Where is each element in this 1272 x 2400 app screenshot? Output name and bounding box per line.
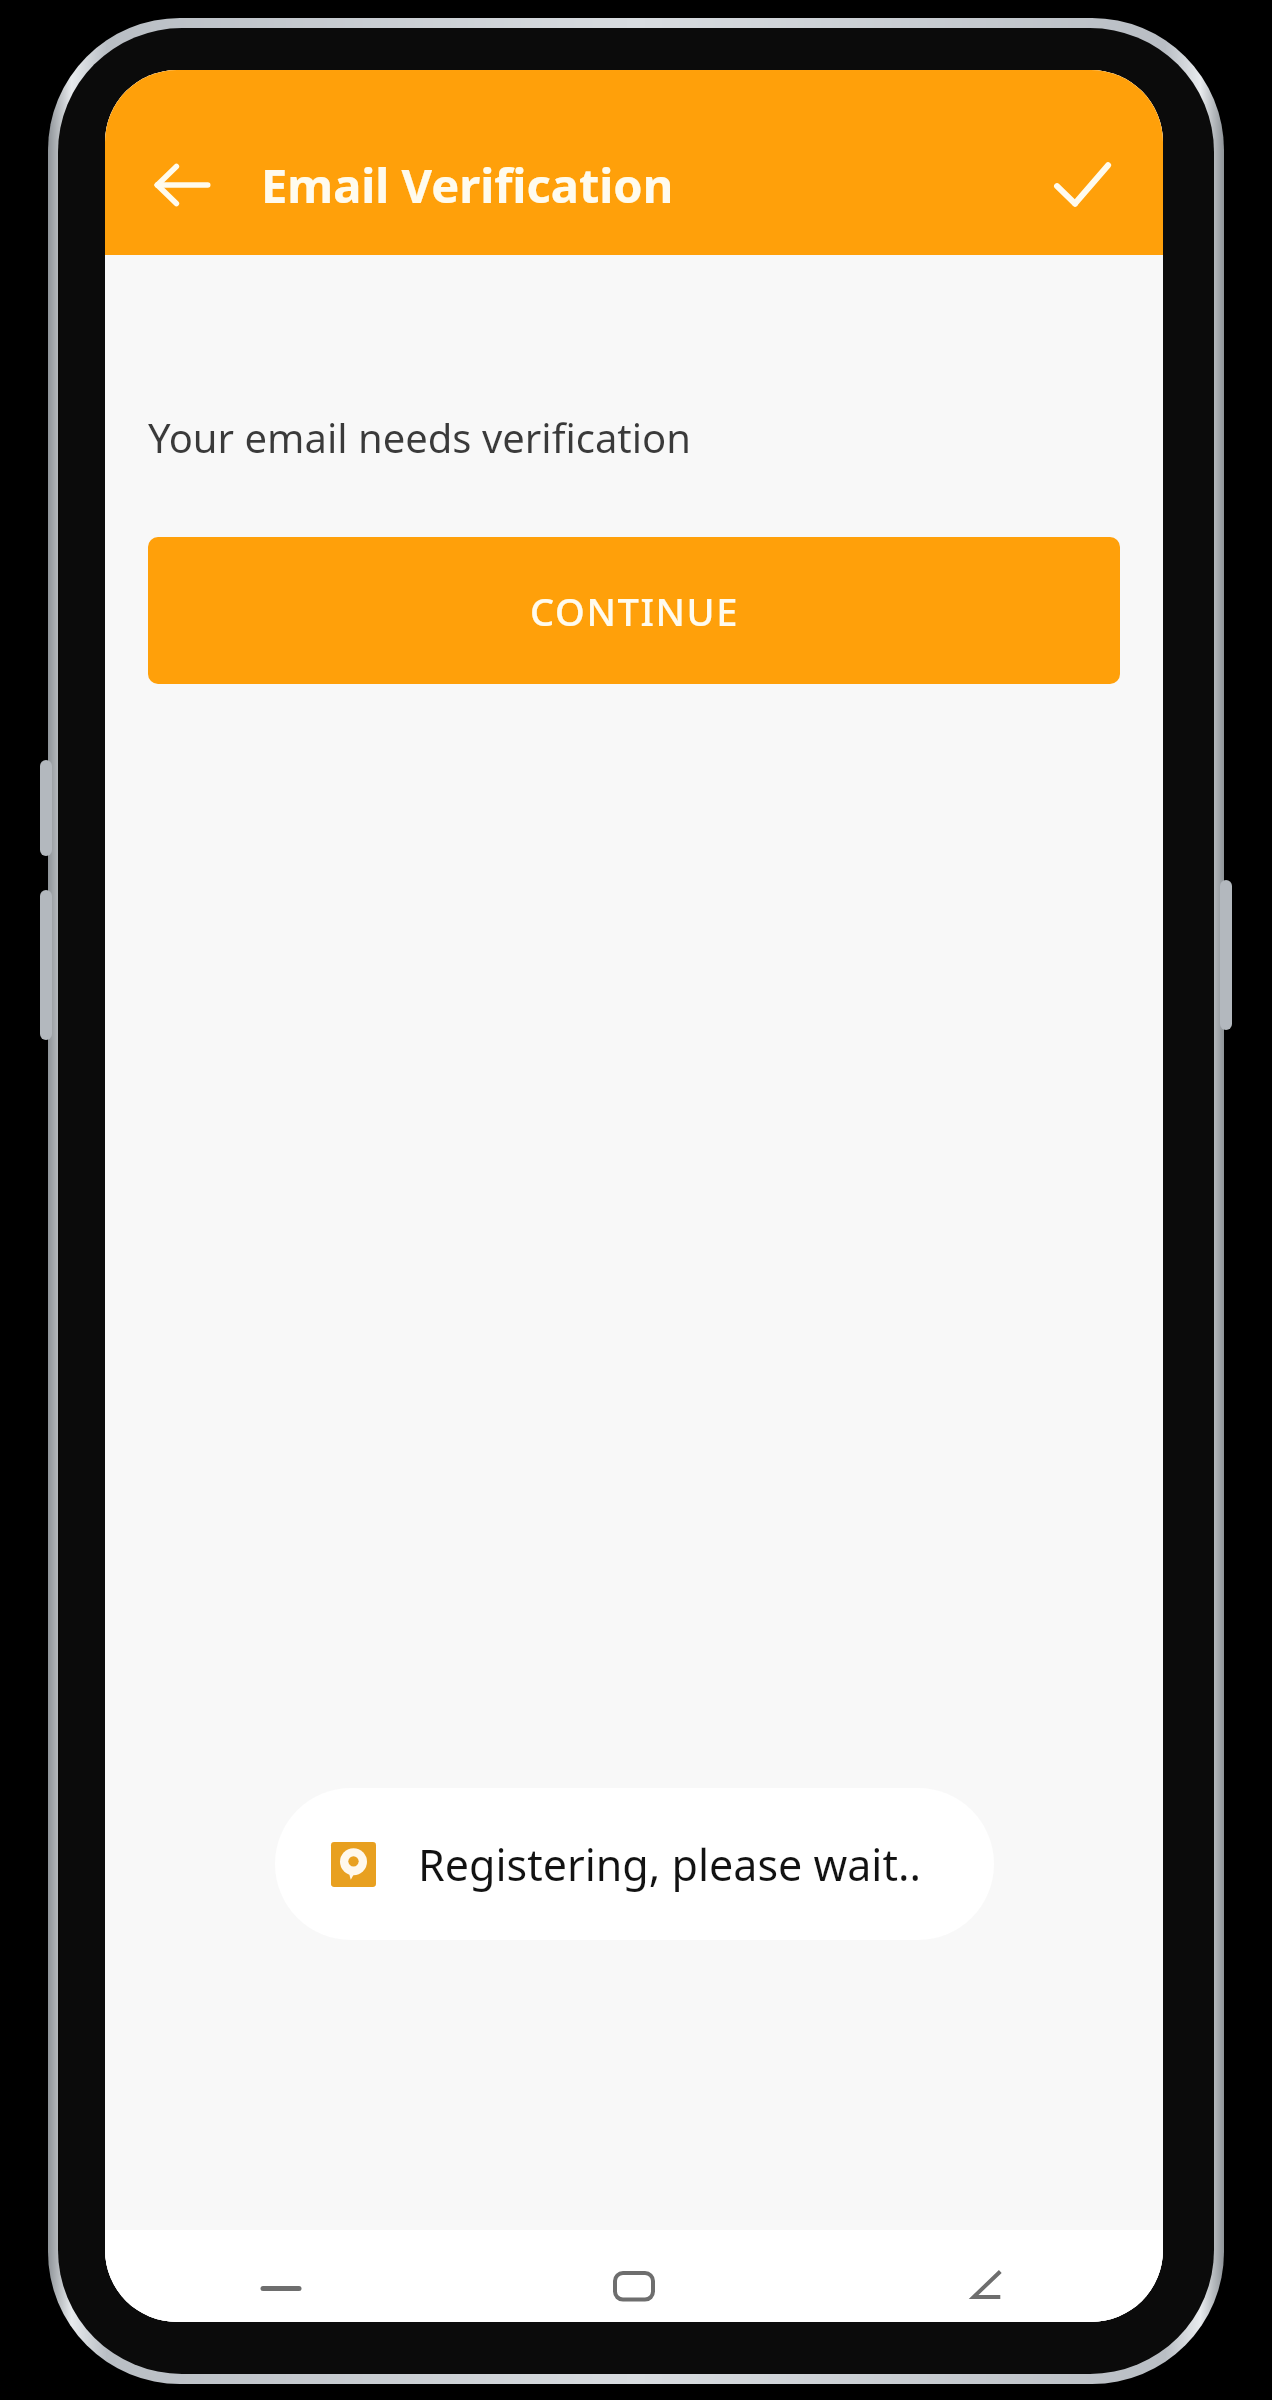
button[interactable]: CONTINUE <box>148 537 1120 684</box>
button[interactable]: Back <box>932 2236 1042 2316</box>
button[interactable]: Home <box>579 2236 689 2316</box>
button[interactable]: Recents <box>226 2236 336 2316</box>
button[interactable]: Confirm <box>1027 130 1137 240</box>
staticText: CONTINUE <box>530 585 739 637</box>
staticText: Your email needs verification <box>148 410 692 464</box>
button[interactable]: Back <box>127 130 237 240</box>
staticText: Email Verification <box>261 153 674 217</box>
staticText: Registering, please wait.. <box>418 1835 922 1894</box>
